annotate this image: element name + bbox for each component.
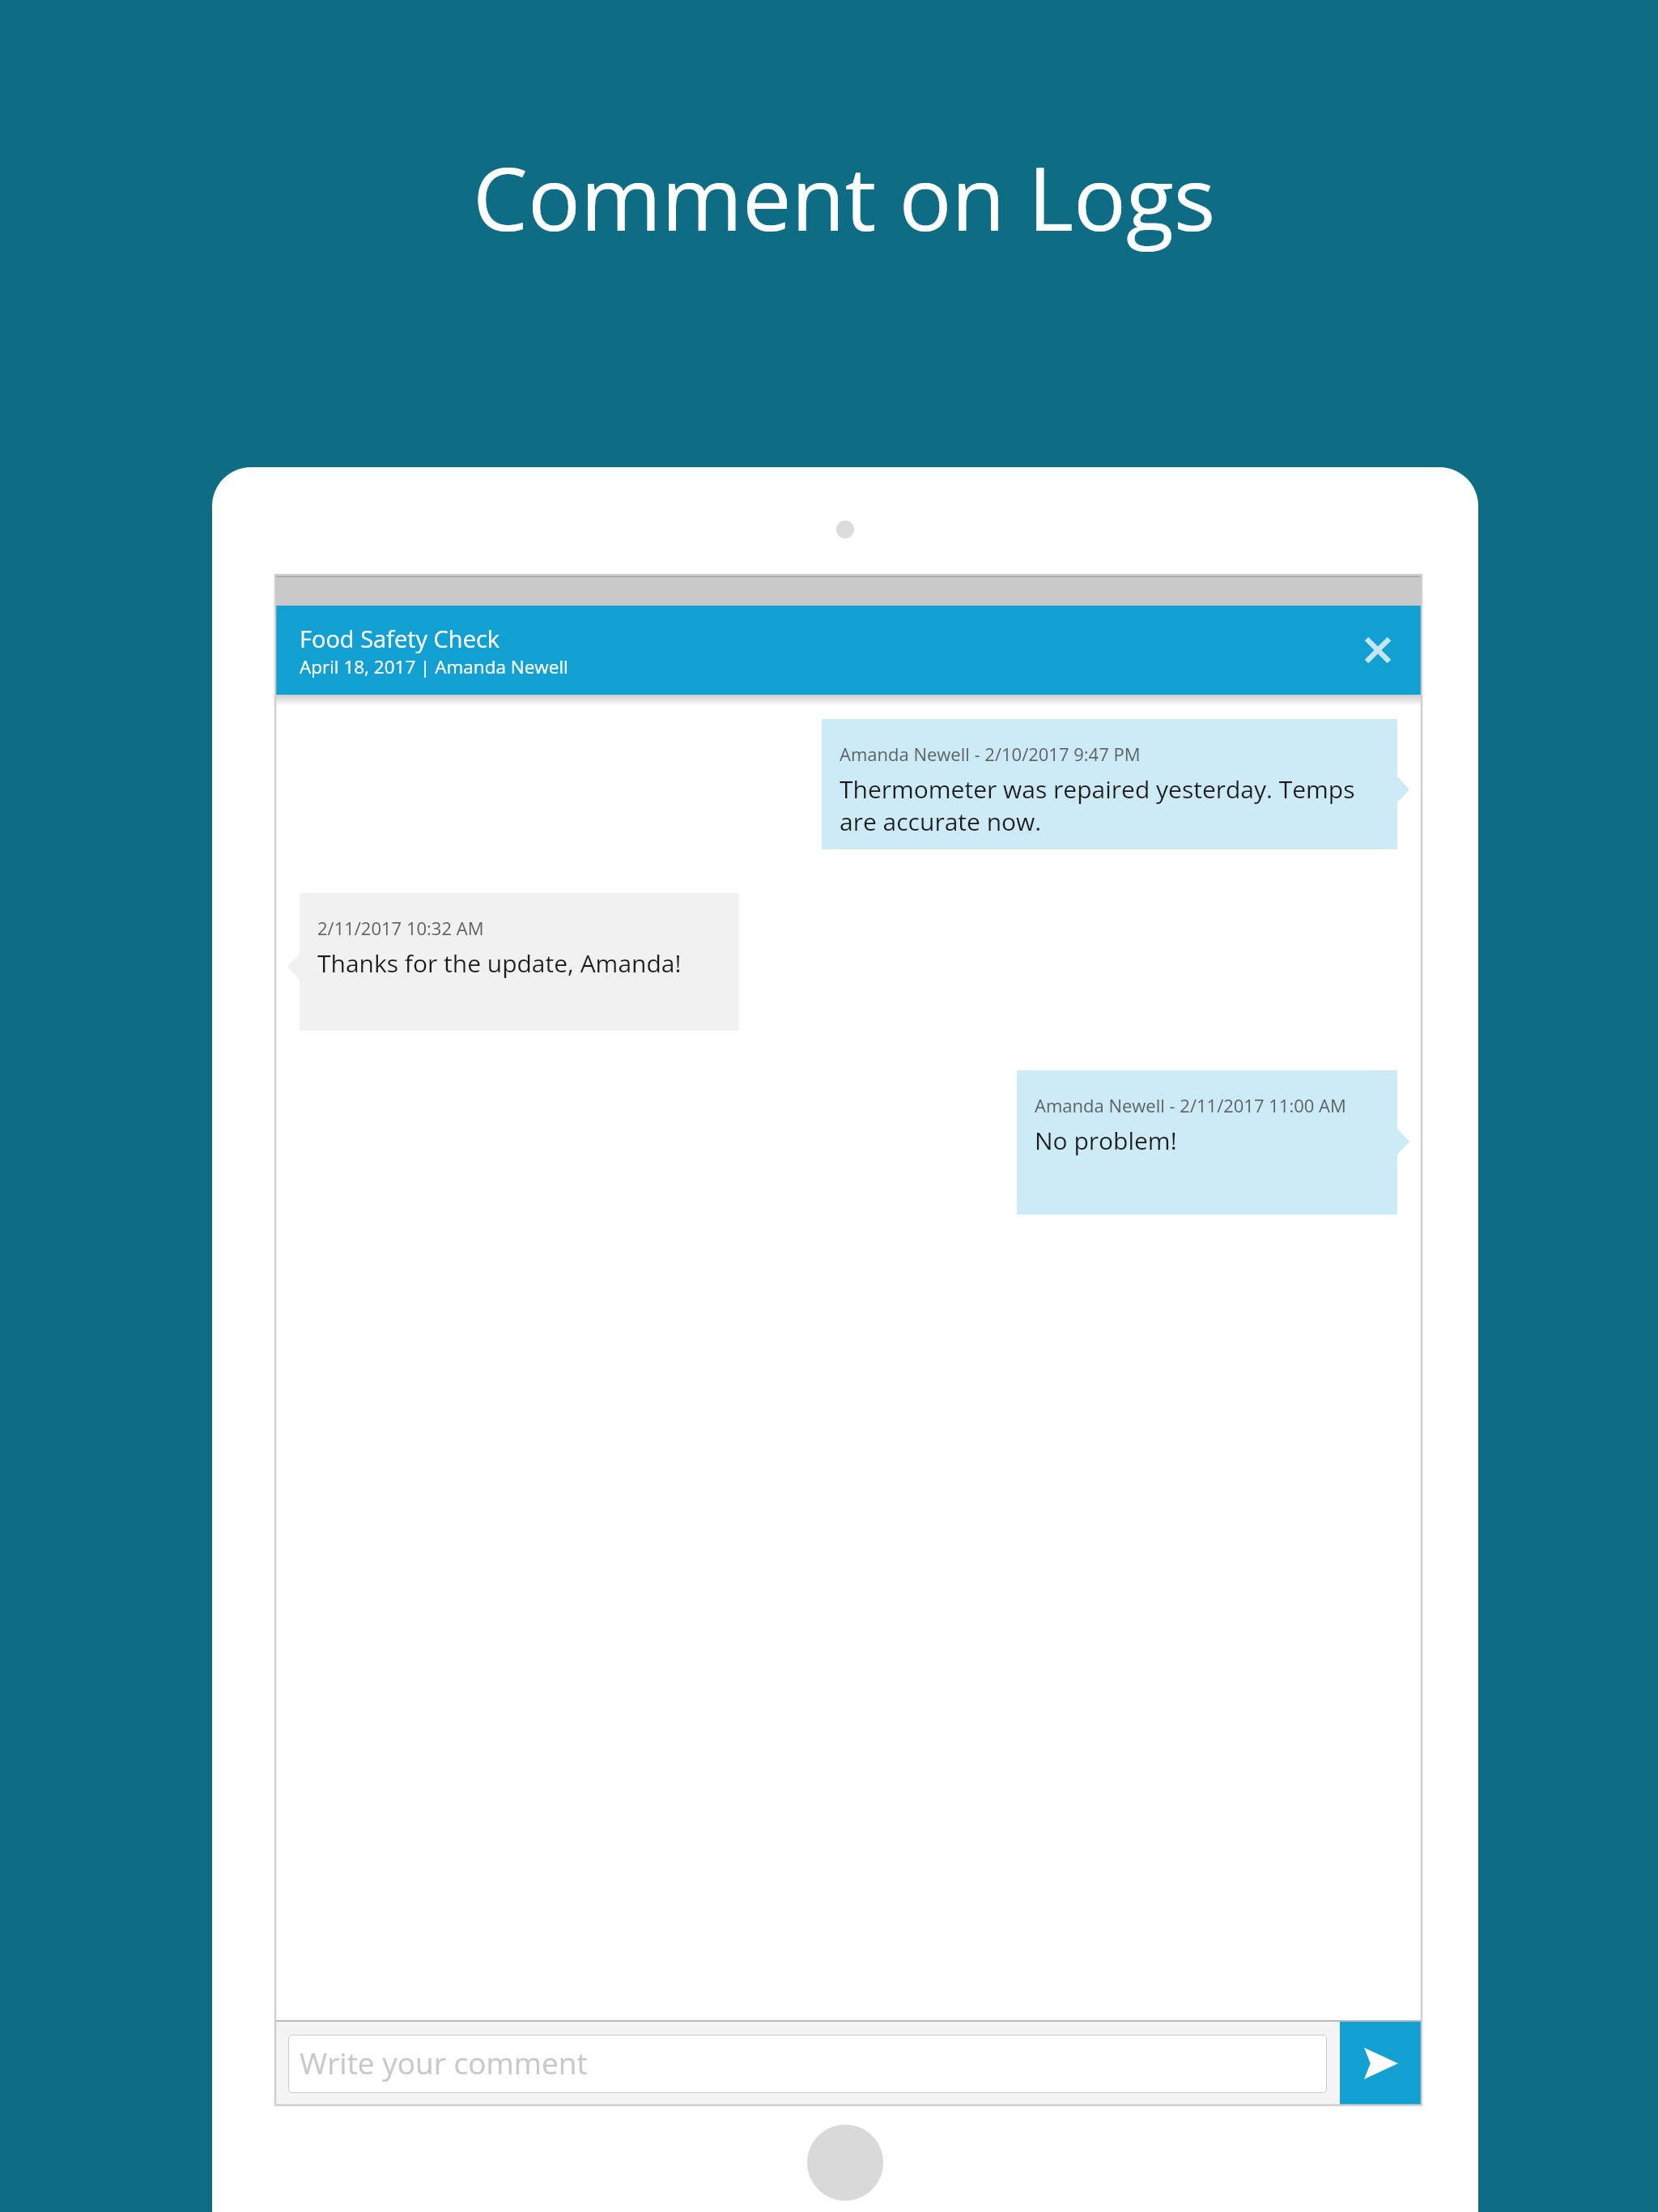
staticText: April 18, 2017 | Amanda Newell	[300, 654, 568, 679]
staticText: 2/11/2017 10:32 AM	[317, 916, 484, 940]
button[interactable]: Send	[1340, 2022, 1422, 2105]
staticText: Food Safety Check	[300, 623, 500, 654]
button[interactable]: Write your comment	[288, 2035, 1327, 2093]
staticText: Thermometer was repaired yesterday. Temp…	[840, 772, 1355, 838]
staticText: Amanda Newell - 2/11/2017 11:00 AM	[1035, 1093, 1346, 1117]
staticText: Amanda Newell - 2/10/2017 9:47 PM	[840, 742, 1141, 766]
staticText: No problem!	[1035, 1124, 1177, 1157]
staticText: Thanks for the update, Amanda!	[317, 946, 682, 980]
staticText: Comment on Logs	[473, 138, 1216, 257]
staticText: Write your comment	[300, 2042, 588, 2082]
button[interactable]: Close	[1333, 606, 1423, 695]
